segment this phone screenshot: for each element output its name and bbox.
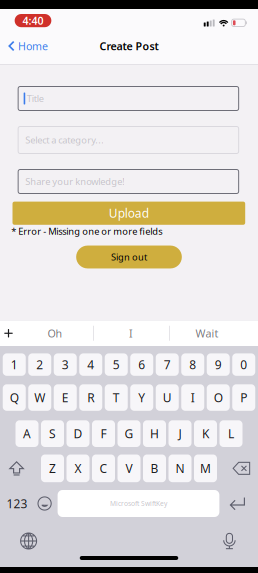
staticText: B bbox=[150, 460, 158, 476]
staticText: Q bbox=[10, 390, 19, 405]
button[interactable]: Wait bbox=[169, 320, 245, 346]
staticText: 7 bbox=[164, 357, 171, 372]
button[interactable]: K bbox=[194, 420, 217, 447]
staticText: 4:40 bbox=[22, 13, 43, 28]
button[interactable]: R bbox=[79, 384, 102, 411]
staticText: Create Post bbox=[99, 39, 158, 53]
button[interactable]: M bbox=[194, 454, 217, 482]
staticText: Z bbox=[49, 460, 56, 476]
button[interactable]: V bbox=[117, 454, 140, 482]
button[interactable]: Microsoft SwiftKey bbox=[58, 490, 219, 517]
button[interactable]: C bbox=[92, 454, 115, 482]
staticText: 6 bbox=[138, 357, 145, 372]
staticText: J bbox=[178, 426, 181, 442]
button[interactable]: 9 bbox=[207, 353, 230, 376]
button[interactable]: P bbox=[232, 384, 255, 411]
button[interactable]: I bbox=[181, 384, 204, 411]
staticText: N bbox=[175, 460, 184, 476]
staticText: 5 bbox=[113, 357, 120, 372]
button[interactable]: Q bbox=[3, 384, 26, 411]
staticText: 9 bbox=[215, 357, 222, 372]
button[interactable]: 5 bbox=[105, 353, 128, 376]
staticText: V bbox=[125, 460, 132, 476]
staticText: Select a category... bbox=[25, 134, 104, 146]
button[interactable]: Y bbox=[130, 384, 153, 411]
button[interactable]: Switch keyboard bbox=[11, 528, 47, 554]
button[interactable]: O bbox=[207, 384, 230, 411]
staticText: Oh bbox=[47, 326, 62, 340]
staticText: C bbox=[99, 460, 107, 476]
button[interactable]: Sign out bbox=[76, 246, 182, 268]
button[interactable]: 7 bbox=[156, 353, 179, 376]
staticText: Microsoft SwiftKey bbox=[110, 499, 167, 508]
staticText: Home bbox=[18, 39, 48, 53]
staticText: O bbox=[214, 390, 223, 405]
staticText: F bbox=[100, 426, 106, 442]
button[interactable]: X bbox=[66, 454, 89, 482]
button[interactable]: 0 bbox=[232, 353, 255, 376]
button[interactable]: Add bbox=[0, 320, 17, 346]
button[interactable]: 3 bbox=[54, 353, 77, 376]
button[interactable]: U bbox=[156, 384, 179, 411]
button[interactable]: Return bbox=[219, 490, 255, 517]
staticText: I bbox=[191, 390, 195, 405]
button[interactable]: Title bbox=[18, 86, 239, 110]
button[interactable]: F bbox=[92, 420, 115, 447]
button[interactable]: T bbox=[105, 384, 128, 411]
staticText: W bbox=[34, 390, 45, 405]
button[interactable]: G bbox=[117, 420, 140, 447]
staticText: 8 bbox=[189, 357, 196, 372]
staticText: 4 bbox=[87, 357, 94, 372]
button[interactable]: Share your knowledge! bbox=[18, 169, 239, 193]
staticText: 2 bbox=[36, 357, 43, 372]
staticText: Y bbox=[138, 390, 145, 405]
button[interactable]: D bbox=[66, 420, 89, 447]
button[interactable]: N bbox=[168, 454, 191, 482]
staticText: * Error - Missing one or more fields bbox=[11, 225, 162, 237]
staticText: H bbox=[150, 426, 159, 442]
staticText: 3 bbox=[62, 357, 69, 372]
button[interactable]: Select a category... bbox=[18, 126, 239, 153]
button[interactable]: Emoji bbox=[32, 490, 58, 517]
staticText: U bbox=[163, 390, 172, 405]
button[interactable]: 4 bbox=[79, 353, 102, 376]
staticText: S bbox=[49, 426, 56, 442]
staticText: Title bbox=[27, 92, 44, 105]
staticText: R bbox=[87, 390, 94, 405]
button[interactable]: S bbox=[41, 420, 64, 447]
button[interactable]: L bbox=[219, 420, 242, 447]
staticText: P bbox=[240, 390, 247, 405]
staticText: A bbox=[23, 426, 31, 442]
button[interactable]: Upload bbox=[12, 202, 245, 225]
button[interactable]: Dictate bbox=[211, 528, 247, 554]
button[interactable]: 8 bbox=[181, 353, 204, 376]
button[interactable]: Oh bbox=[17, 320, 93, 346]
button[interactable]: Backspace bbox=[227, 454, 255, 482]
button[interactable]: I bbox=[93, 320, 169, 346]
button[interactable]: Home bbox=[0, 32, 56, 60]
staticText: 1 bbox=[11, 357, 18, 372]
staticText: K bbox=[202, 426, 209, 442]
staticText: 123 bbox=[7, 495, 28, 511]
button[interactable]: 123 bbox=[3, 490, 32, 517]
button[interactable]: Z bbox=[41, 454, 64, 482]
staticText: L bbox=[228, 426, 234, 442]
staticText: T bbox=[113, 390, 120, 405]
button[interactable]: W bbox=[28, 384, 51, 411]
staticText: Wait bbox=[195, 326, 218, 340]
button[interactable]: J bbox=[168, 420, 191, 447]
button[interactable]: E bbox=[54, 384, 77, 411]
button[interactable]: 1 bbox=[3, 353, 26, 376]
staticText: X bbox=[74, 460, 81, 476]
button[interactable]: H bbox=[143, 420, 166, 447]
staticText: D bbox=[73, 426, 82, 442]
staticText: I bbox=[129, 326, 133, 340]
button[interactable]: A bbox=[15, 420, 38, 447]
staticText: Share your knowledge! bbox=[25, 175, 125, 188]
staticText: Upload bbox=[109, 205, 149, 221]
staticText: G bbox=[124, 426, 133, 442]
button[interactable]: 2 bbox=[28, 353, 51, 376]
button[interactable]: B bbox=[143, 454, 166, 482]
button[interactable]: Shift bbox=[3, 454, 31, 482]
button[interactable]: 6 bbox=[130, 353, 153, 376]
